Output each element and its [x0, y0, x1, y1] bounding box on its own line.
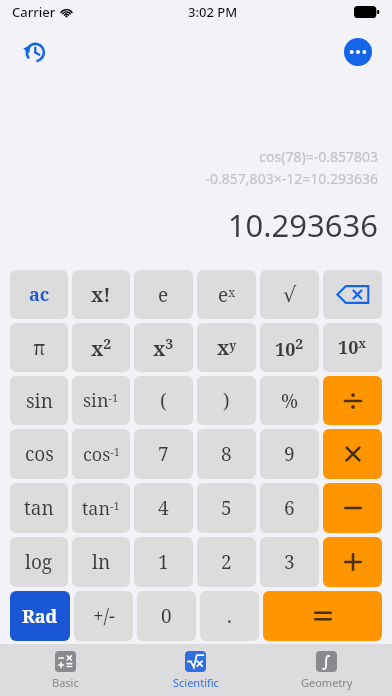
button[interactable]: x!	[72, 270, 130, 319]
button[interactable]: tan-1	[72, 483, 130, 533]
staticText: %	[281, 388, 299, 414]
staticText: 10x	[338, 335, 367, 360]
staticText: 0	[161, 603, 172, 629]
button[interactable]: x2	[72, 323, 130, 372]
other: Backspace	[336, 284, 370, 305]
button[interactable]: 3	[260, 537, 319, 587]
button[interactable]: tan	[10, 483, 68, 533]
staticText: 9	[284, 441, 295, 467]
button[interactable]: More options	[336, 30, 380, 74]
button[interactable]: )	[197, 376, 256, 425]
staticText: (	[160, 388, 167, 414]
button[interactable]: ln	[72, 537, 130, 587]
staticText: ln	[92, 549, 111, 575]
staticText: Geometry	[301, 675, 353, 690]
button[interactable]: Add	[323, 537, 382, 587]
button[interactable]: sin-1	[72, 376, 130, 425]
button[interactable]: (	[134, 376, 193, 425]
staticText: 4	[158, 495, 169, 521]
staticText: ex	[218, 282, 236, 308]
button[interactable]: +/-	[74, 591, 133, 641]
button[interactable]: x3	[134, 323, 193, 372]
staticText: tan	[24, 495, 54, 521]
button[interactable]: 7	[134, 429, 193, 479]
staticText: Basic	[52, 675, 79, 690]
staticText: 3:02 PM	[188, 3, 238, 21]
button[interactable]: ∫	[261, 644, 392, 696]
button[interactable]: 0	[137, 591, 196, 641]
staticText: 7	[158, 441, 169, 467]
button[interactable]: 9	[260, 429, 319, 479]
button[interactable]: sin	[10, 376, 68, 425]
button[interactable]: cos-1	[72, 429, 130, 479]
button[interactable]: History	[12, 30, 56, 74]
staticText: sin-1	[83, 388, 119, 413]
button[interactable]: %	[260, 376, 319, 425]
button[interactable]: π	[10, 323, 68, 372]
staticText: 2	[221, 549, 232, 575]
button[interactable]: 6	[260, 483, 319, 533]
staticText: cos	[25, 441, 54, 467]
button[interactable]: 5	[197, 483, 256, 533]
staticText: log	[25, 549, 53, 575]
button[interactable]: Rad	[10, 591, 70, 641]
staticText: √	[283, 283, 297, 307]
button[interactable]: .	[200, 591, 259, 641]
staticText: 102	[275, 334, 304, 361]
staticText: 5	[221, 495, 232, 521]
button[interactable]: xy	[197, 323, 256, 372]
button[interactable]: Backspace	[323, 270, 382, 319]
staticText: 8	[221, 441, 232, 467]
button[interactable]: Multiply	[323, 429, 382, 479]
button[interactable]: Basic	[0, 644, 130, 696]
button[interactable]: Scientific	[130, 644, 261, 696]
staticText: xy	[217, 335, 237, 361]
button[interactable]: √	[260, 270, 319, 319]
button[interactable]: e	[134, 270, 193, 319]
button[interactable]: Subtract	[323, 483, 382, 533]
staticText: .	[227, 603, 232, 629]
staticText: cos-1	[83, 442, 120, 467]
staticText: π	[33, 335, 46, 361]
staticText: Scientific	[173, 675, 219, 690]
staticText: tan-1	[82, 496, 120, 521]
staticText: x3	[153, 334, 174, 361]
staticText: 1	[158, 549, 169, 575]
button[interactable]: 4	[134, 483, 193, 533]
staticText: 6	[284, 495, 295, 521]
button[interactable]: cos	[10, 429, 68, 479]
button[interactable]: ex	[197, 270, 256, 319]
staticText: 3	[284, 549, 295, 575]
staticText: Rad	[22, 604, 58, 629]
button[interactable]: 102	[260, 323, 319, 372]
staticText: x2	[91, 334, 112, 361]
button[interactable]: Divide	[323, 376, 382, 425]
staticText: )	[223, 388, 230, 414]
staticText: +/-	[93, 603, 115, 629]
staticText: x!	[91, 282, 111, 308]
staticText: sin	[26, 388, 53, 414]
staticText: cos(78)=-0.857803	[259, 147, 378, 166]
staticText: Carrier	[12, 3, 56, 21]
button[interactable]: Equals	[263, 591, 382, 641]
staticText: -0.857,803×-12=10.293636	[205, 169, 378, 188]
button[interactable]: 1	[134, 537, 193, 587]
button[interactable]: 2	[197, 537, 256, 587]
staticText: 10.293636	[227, 204, 378, 246]
staticText: ∫	[322, 652, 331, 671]
staticText: e	[158, 282, 169, 308]
button[interactable]: 10x	[323, 323, 382, 372]
button[interactable]: 8	[197, 429, 256, 479]
button[interactable]: ac	[10, 270, 68, 319]
button[interactable]: log	[10, 537, 68, 587]
staticText: ac	[29, 282, 50, 307]
